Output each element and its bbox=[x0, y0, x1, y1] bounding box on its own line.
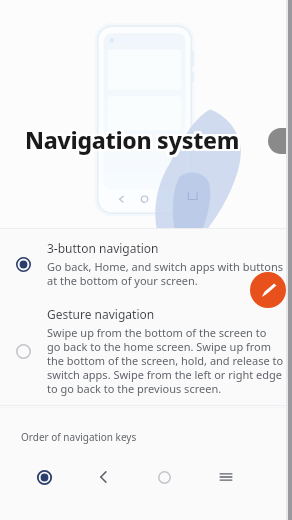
button[interactable]: Recent apps bbox=[195, 462, 256, 492]
staticText: Navigation system bbox=[25, 126, 240, 157]
staticText: Navigation system bbox=[23, 126, 238, 157]
staticText: Navigation system bbox=[25, 122, 240, 153]
staticText: Navigation system bbox=[25, 126, 240, 157]
button[interactable]: Back bbox=[74, 462, 134, 492]
button[interactable]: Gesture navigation bbox=[0, 306, 292, 396]
staticText: Navigation system bbox=[23, 124, 238, 155]
staticText: Order of navigation keys bbox=[21, 430, 137, 444]
staticText: Navigation system bbox=[27, 124, 242, 155]
staticText: Navigation system bbox=[27, 126, 242, 157]
button[interactable]: Key order option bbox=[14, 462, 74, 492]
button[interactable]: Home bbox=[134, 462, 195, 492]
staticText: Navigation system bbox=[23, 122, 238, 153]
staticText: Gesture navigation bbox=[47, 306, 155, 322]
staticText: 3-button navigation bbox=[47, 240, 159, 256]
staticText: Swipe up from the bottom of the screen t… bbox=[47, 325, 284, 396]
button[interactable]: Edit bbox=[250, 272, 286, 308]
staticText: Navigation system bbox=[25, 122, 240, 153]
staticText: Navigation system bbox=[25, 124, 240, 155]
staticText: Navigation system bbox=[23, 124, 238, 155]
button[interactable]: 3-button navigation bbox=[0, 240, 292, 288]
staticText: Go back, Home, and switch apps with butt… bbox=[47, 259, 283, 288]
staticText: Navigation system bbox=[27, 124, 242, 155]
staticText: Navigation system bbox=[27, 122, 242, 153]
